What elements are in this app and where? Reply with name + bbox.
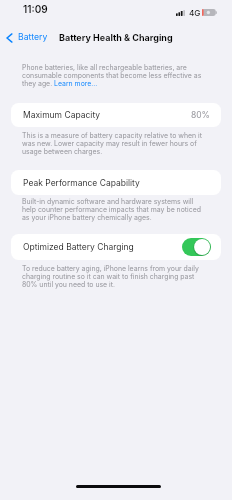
staticText: 11:09 xyxy=(23,3,48,15)
staticText: 80% xyxy=(191,110,210,120)
button[interactable]: Optimized Battery Charging xyxy=(182,238,211,256)
staticText: This is a measure of battery capacity re… xyxy=(22,131,207,155)
staticText: Maximum Capacity xyxy=(23,110,101,120)
button[interactable]: Maximum Capacity xyxy=(11,103,221,127)
staticText: Battery Health & Charging xyxy=(59,32,173,43)
staticText: Phone batteries, like all rechargeable b… xyxy=(22,63,207,87)
staticText: 4G xyxy=(189,8,201,18)
staticText: To reduce battery aging, iPhone learns f… xyxy=(22,264,207,288)
staticText: Battery xyxy=(18,32,48,43)
staticText: Built-in dynamic software and hardware s… xyxy=(22,197,207,221)
staticText: Optimized Battery Charging xyxy=(23,242,134,252)
button[interactable]: Optimized Battery Charging xyxy=(11,234,221,260)
button[interactable]: Peak Performance Capability xyxy=(11,170,221,195)
button[interactable]: Battery xyxy=(6,31,48,44)
staticText: Peak Performance Capability xyxy=(23,178,140,188)
